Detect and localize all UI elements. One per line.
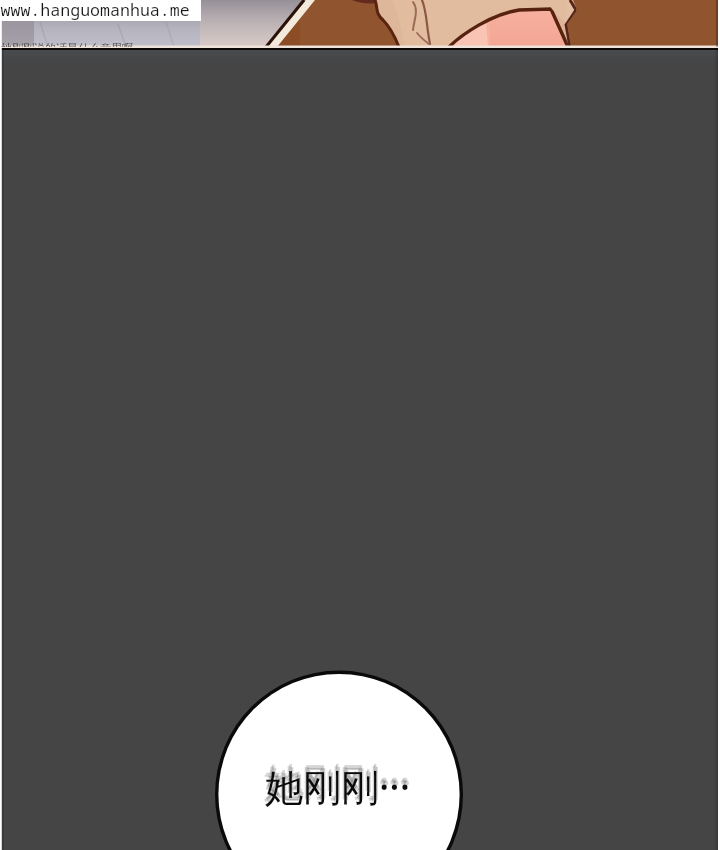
button[interactable]: Comic page (0, 0, 720, 850)
